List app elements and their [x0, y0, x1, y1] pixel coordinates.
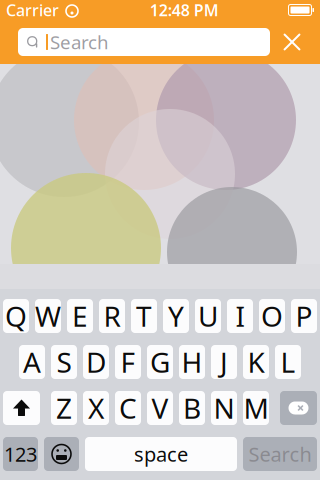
staticText: G: [150, 343, 170, 381]
button[interactable]: Z: [51, 391, 77, 425]
staticText: S: [56, 343, 71, 381]
staticText: space: [134, 441, 188, 467]
button[interactable]: W: [35, 299, 61, 333]
staticText: J: [220, 343, 228, 381]
button[interactable]: Shift: [3, 391, 40, 425]
button[interactable]: T: [131, 299, 157, 333]
staticText: N: [213, 389, 234, 427]
button[interactable]: Search: [18, 28, 270, 56]
staticText: L: [280, 343, 295, 381]
button[interactable]: D: [83, 345, 109, 379]
staticText: X: [88, 389, 104, 427]
button[interactable]: F: [115, 345, 141, 379]
button[interactable]: B: [179, 391, 205, 425]
button[interactable]: M: [243, 391, 269, 425]
staticText: I: [235, 297, 244, 335]
staticText: F: [120, 343, 135, 381]
staticText: Carrier: [6, 0, 59, 21]
button[interactable]: K: [243, 345, 269, 379]
button[interactable]: Close search: [270, 25, 314, 59]
staticText: D: [86, 343, 106, 381]
staticText: Y: [168, 297, 184, 335]
staticText: Search: [248, 441, 311, 467]
staticText: H: [181, 343, 202, 381]
button[interactable]: V: [147, 391, 173, 425]
staticText: U: [198, 297, 218, 335]
button[interactable]: L: [275, 345, 301, 379]
staticText: R: [103, 297, 120, 335]
button[interactable]: space: [85, 437, 237, 471]
staticText: C: [119, 389, 137, 427]
staticText: O: [261, 297, 283, 335]
button[interactable]: Delete: [280, 391, 317, 425]
button[interactable]: Search: [243, 437, 317, 471]
button[interactable]: R: [99, 299, 125, 333]
staticText: W: [35, 297, 61, 335]
staticText: A: [23, 343, 41, 381]
button[interactable]: O: [259, 299, 285, 333]
button[interactable]: Emoji keyboard: [44, 437, 79, 471]
button[interactable]: X: [83, 391, 109, 425]
button[interactable]: N: [211, 391, 237, 425]
button[interactable]: J: [211, 345, 237, 379]
button[interactable]: Y: [163, 299, 189, 333]
staticText: M: [243, 389, 268, 427]
staticText: K: [247, 343, 264, 381]
button[interactable]: Q: [3, 299, 29, 333]
button[interactable]: C: [115, 391, 141, 425]
button[interactable]: P: [291, 299, 317, 333]
staticText: 123: [4, 441, 37, 467]
button[interactable]: H: [179, 345, 205, 379]
staticText: T: [136, 297, 152, 335]
button[interactable]: G: [147, 345, 173, 379]
staticText: E: [72, 297, 88, 335]
button[interactable]: E: [67, 299, 93, 333]
button[interactable]: S: [51, 345, 77, 379]
button[interactable]: A: [19, 345, 45, 379]
staticText: Q: [5, 297, 27, 335]
staticText: Search: [50, 30, 109, 54]
staticText: Z: [56, 389, 72, 427]
button[interactable]: I: [227, 299, 253, 333]
staticText: 12:48 PM: [150, 0, 219, 21]
staticText: P: [295, 297, 312, 335]
staticText: B: [183, 389, 201, 427]
button[interactable]: 123: [3, 437, 38, 471]
staticText: V: [151, 389, 168, 427]
button[interactable]: U: [195, 299, 221, 333]
